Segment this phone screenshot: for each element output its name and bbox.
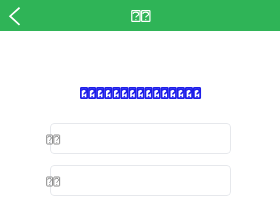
button[interactable] [50,165,231,196]
button[interactable]: Back [0,1,29,30]
button[interactable] [50,123,231,154]
